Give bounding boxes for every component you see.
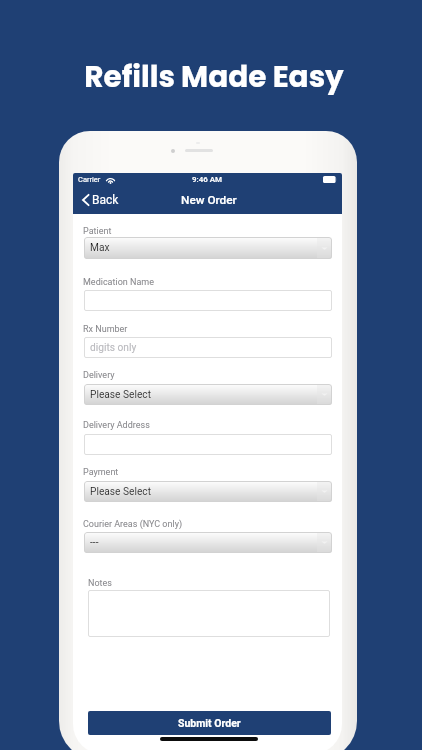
staticText: Courier Areas (NYC only) <box>83 519 183 530</box>
button[interactable]: Max <box>84 237 332 259</box>
staticText: Back <box>92 193 119 207</box>
staticText: 9:46 AM <box>192 175 223 184</box>
staticText: Rx Number <box>83 324 128 335</box>
staticText: Patient <box>83 226 112 237</box>
button[interactable]: Back <box>81 191 120 209</box>
staticText: Please Select <box>90 389 152 401</box>
button[interactable]: Submit Order <box>88 711 331 735</box>
staticText: Delivery <box>83 370 115 381</box>
staticText: --- <box>90 537 99 549</box>
button[interactable]: Please Select <box>84 481 332 502</box>
button[interactable]: Please Select <box>84 384 332 405</box>
staticText: digits only <box>90 342 137 354</box>
staticText: Please Select <box>90 486 152 498</box>
staticText: Payment <box>83 467 119 478</box>
button[interactable]: --- <box>84 532 332 553</box>
staticText: Delivery Address <box>83 420 150 431</box>
staticText: Notes <box>88 578 112 589</box>
staticText: Max <box>90 242 110 254</box>
button[interactable] <box>84 290 332 311</box>
staticText: Carrier <box>78 175 101 184</box>
staticText: Submit Order <box>178 717 241 729</box>
button[interactable] <box>84 434 332 455</box>
staticText: Medication Name <box>83 277 154 288</box>
staticText: New Order <box>181 193 237 207</box>
staticText: Refills Made Easy <box>84 56 344 97</box>
button[interactable]: digits only <box>84 337 332 358</box>
button[interactable] <box>88 590 330 637</box>
